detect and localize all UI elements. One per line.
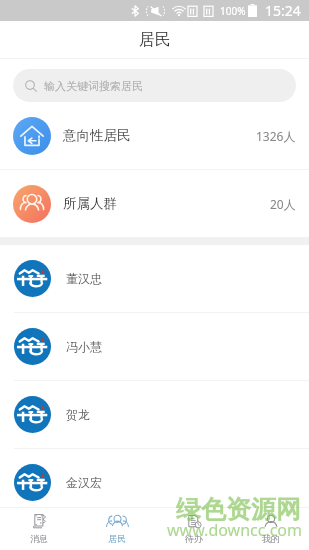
- button[interactable]: 金汉宏: [0, 449, 309, 516]
- staticText: 我的: [262, 533, 280, 544]
- button[interactable]: 我的: [232, 508, 309, 550]
- button[interactable]: 贺龙: [0, 381, 309, 448]
- staticText: 15:24: [265, 1, 301, 20]
- staticText: 待办: [185, 533, 203, 544]
- button[interactable]: 输入关键词搜索居民: [13, 69, 296, 102]
- staticText: www.downcc.com: [167, 519, 303, 541]
- staticText: 20人: [270, 196, 296, 212]
- button[interactable]: 待办: [155, 508, 232, 550]
- staticText: 1326人: [256, 128, 296, 144]
- staticText: 冯小慧: [66, 339, 102, 354]
- button[interactable]: 所属人群: [0, 170, 309, 237]
- staticText: 输入关键词搜索居民: [44, 79, 143, 93]
- staticText: 所属人群: [63, 195, 117, 212]
- staticText: 贺龙: [66, 407, 90, 422]
- staticText: 金汉宏: [66, 475, 102, 490]
- button[interactable]: 董汉忠: [0, 245, 309, 312]
- staticText: 消息: [30, 533, 48, 544]
- staticText: 绿色资源网: [176, 494, 301, 525]
- button[interactable]: 冯小慧: [0, 313, 309, 380]
- button[interactable]: 意向性居民: [0, 102, 309, 169]
- button[interactable]: 居民: [78, 508, 155, 550]
- staticText: 居民: [108, 533, 126, 544]
- staticText: 董汉忠: [66, 271, 102, 286]
- button[interactable]: 消息: [0, 508, 78, 550]
- staticText: 居民: [139, 30, 171, 50]
- staticText: 100%: [220, 4, 246, 18]
- staticText: 意向性居民: [63, 127, 131, 144]
